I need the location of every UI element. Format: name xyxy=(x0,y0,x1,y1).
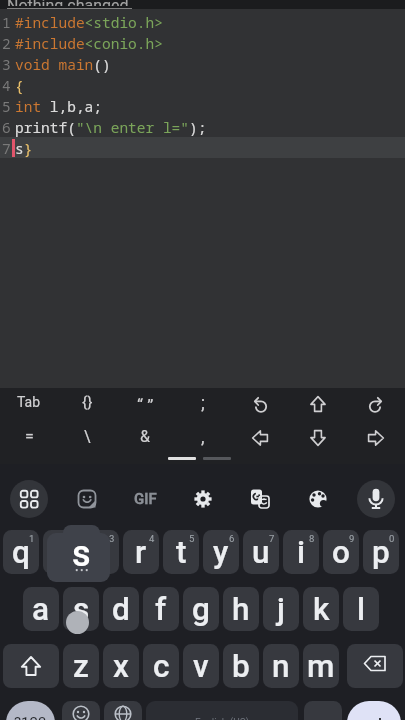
button[interactable]: m xyxy=(303,644,339,688)
button[interactable]: v xyxy=(183,644,219,688)
button[interactable]: English (US) xyxy=(146,701,298,720)
button[interactable]: w xyxy=(43,530,79,574)
button[interactable] xyxy=(10,480,48,518)
button[interactable]: k xyxy=(303,587,339,631)
staticText: h xyxy=(232,591,250,628)
button[interactable]: x xyxy=(103,644,139,688)
staticText: a xyxy=(32,591,50,628)
staticText: {} xyxy=(82,393,93,411)
staticText: Tab xyxy=(17,394,41,410)
button[interactable] xyxy=(304,485,332,513)
button[interactable]: o xyxy=(323,530,359,574)
staticText: f xyxy=(155,591,167,628)
staticText: 3 xyxy=(2,54,11,74)
button[interactable] xyxy=(104,701,142,720)
staticText: 5 xyxy=(189,533,195,544)
button[interactable]: p xyxy=(363,530,399,574)
button[interactable]: t xyxy=(163,530,199,574)
staticText: s xyxy=(73,591,90,628)
button[interactable]: “ ” xyxy=(116,388,174,422)
button[interactable] xyxy=(62,701,100,720)
staticText: 0 xyxy=(389,533,395,544)
staticText: t xyxy=(176,534,187,571)
staticText: m xyxy=(307,648,335,685)
staticText: ⋯ xyxy=(74,561,89,578)
button[interactable] xyxy=(304,424,332,452)
staticText: n xyxy=(272,648,290,685)
button[interactable]: f xyxy=(143,587,179,631)
button[interactable] xyxy=(246,390,274,418)
button[interactable]: c xyxy=(143,644,179,688)
button[interactable]: h xyxy=(223,587,259,631)
button[interactable] xyxy=(3,644,59,688)
button[interactable] xyxy=(246,424,274,452)
staticText: k xyxy=(313,591,330,628)
staticText: z xyxy=(73,648,89,685)
staticText: , xyxy=(201,426,205,447)
button[interactable]: \ xyxy=(58,419,116,453)
button[interactable]: u xyxy=(243,530,279,574)
staticText: English (US) xyxy=(195,717,250,720)
button[interactable]: b xyxy=(223,644,259,688)
button[interactable] xyxy=(347,701,401,720)
button[interactable] xyxy=(304,390,332,418)
button[interactable] xyxy=(362,390,390,418)
button[interactable]: , xyxy=(174,419,232,453)
staticText: s} xyxy=(15,138,33,158)
staticText: #include<stdio.h> xyxy=(15,12,163,32)
button[interactable]: j xyxy=(263,587,299,631)
staticText: 8 xyxy=(309,533,315,544)
button[interactable]: . xyxy=(304,701,342,720)
staticText: s xyxy=(72,533,91,575)
button[interactable]: a xyxy=(23,587,59,631)
button[interactable]: i xyxy=(283,530,319,574)
staticText: x xyxy=(113,648,129,685)
staticText: 1 xyxy=(2,12,11,32)
staticText: q xyxy=(12,534,30,571)
staticText: “ ” xyxy=(137,395,154,415)
staticText: { xyxy=(15,75,24,95)
button[interactable]: n xyxy=(263,644,299,688)
button[interactable]: r xyxy=(123,530,159,574)
button[interactable]: {} xyxy=(58,385,116,419)
staticText: 5 xyxy=(2,96,11,116)
button[interactable]: g xyxy=(183,587,219,631)
button[interactable] xyxy=(347,644,403,688)
button[interactable]: s xyxy=(63,587,99,631)
button[interactable] xyxy=(362,424,390,452)
button[interactable]: ?123 xyxy=(6,701,55,720)
button[interactable] xyxy=(73,485,101,513)
button[interactable]: l xyxy=(343,587,379,631)
button[interactable]: y xyxy=(203,530,239,574)
button[interactable]: ; xyxy=(174,385,232,419)
button[interactable]: d xyxy=(103,587,139,631)
button[interactable]: GIF xyxy=(116,482,174,516)
button[interactable]: = xyxy=(0,419,58,453)
staticText: int l,b,a; xyxy=(15,96,102,116)
staticText: u xyxy=(252,534,270,571)
staticText: 3 xyxy=(109,533,115,544)
staticText: p xyxy=(372,534,390,571)
staticText: 9 xyxy=(349,533,355,544)
staticText: v xyxy=(193,648,209,685)
staticText: 7 xyxy=(2,138,11,158)
button[interactable]: & xyxy=(116,419,174,453)
button[interactable]: Tab xyxy=(0,385,58,419)
staticText: #include<conio.h> xyxy=(15,33,163,53)
button[interactable]: q xyxy=(3,530,39,574)
staticText: i xyxy=(297,534,306,571)
staticText: o xyxy=(332,534,350,571)
button[interactable]: z xyxy=(63,644,99,688)
staticText: ?123 xyxy=(14,714,47,720)
staticText: void main() xyxy=(15,54,111,74)
staticText: Nothing changed xyxy=(7,0,129,6)
button[interactable]: e xyxy=(83,530,119,574)
button[interactable] xyxy=(357,480,395,518)
staticText: printf("\n enter l="); xyxy=(15,117,207,137)
staticText: ; xyxy=(201,392,205,413)
button[interactable] xyxy=(189,485,217,513)
button[interactable] xyxy=(246,485,274,513)
staticText: = xyxy=(25,427,34,446)
staticText: & xyxy=(140,427,150,446)
